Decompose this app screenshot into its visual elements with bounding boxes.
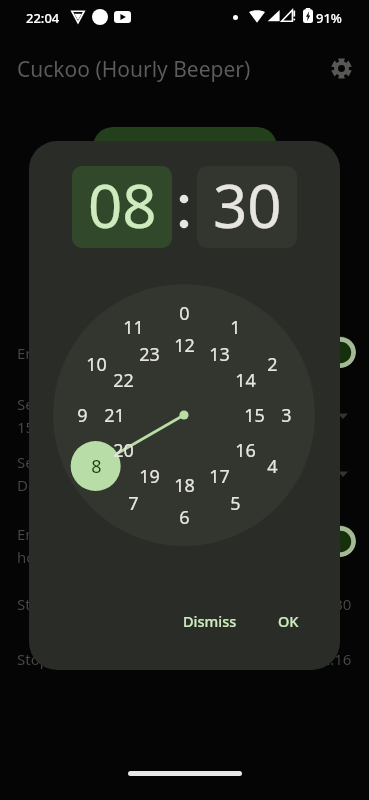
staticText: 30 (213, 166, 282, 246)
staticText: 15 ticks (17, 417, 70, 437)
staticText: Enable hourly beeps (17, 343, 161, 363)
staticText: 10 (86, 352, 107, 377)
staticText: 6 (179, 505, 190, 530)
staticText: 16 (235, 438, 256, 463)
staticText: Select volume (17, 452, 115, 472)
button[interactable]: 08 (72, 166, 172, 248)
staticText: 17 (209, 464, 230, 489)
staticText: 11 (123, 315, 144, 340)
staticText: OK (278, 611, 299, 631)
staticText: Stop time (17, 649, 85, 669)
staticText: 3 (281, 403, 292, 428)
staticText: 08:30 (313, 594, 352, 614)
staticText: 18 (174, 473, 195, 498)
button[interactable]: OK (266, 603, 311, 639)
staticText: Default (17, 475, 69, 495)
button[interactable] (306, 336, 356, 368)
staticText: 15 (244, 403, 265, 428)
staticText: 0 (179, 301, 190, 326)
staticText: 1 (230, 315, 241, 340)
staticText: Cuckoo (Hourly Beeper) (17, 55, 251, 84)
staticText: 22 (113, 368, 134, 393)
staticText: 12 (174, 333, 195, 358)
staticText: 22:16 (313, 649, 352, 669)
staticText: 8 (91, 454, 102, 479)
staticText: 91% (316, 9, 342, 27)
staticText: Start time (17, 594, 87, 614)
staticText: 23 (139, 342, 160, 367)
staticText: 4 (267, 454, 278, 479)
button[interactable] (93, 127, 277, 167)
button[interactable] (306, 525, 356, 557)
button[interactable]: Settings (325, 52, 357, 84)
staticText: 08 (88, 166, 157, 246)
staticText: 9 (77, 403, 88, 428)
staticText: 21 (104, 403, 125, 428)
staticText: hourly chime (17, 547, 110, 567)
button[interactable]: Dismiss (171, 603, 249, 639)
staticText: Select sound (17, 394, 107, 414)
staticText: 14 (235, 368, 256, 393)
staticText: 5 (230, 491, 241, 516)
staticText: 22:04 (26, 9, 60, 27)
staticText: 2 (267, 352, 278, 377)
staticText: 19 (139, 464, 160, 489)
button[interactable]: 30 (197, 166, 297, 248)
staticText: Enable on the hour (17, 524, 152, 544)
staticText: 13 (209, 342, 230, 367)
staticText: 20 (113, 438, 134, 463)
staticText: Dismiss (183, 611, 237, 631)
staticText: 7 (128, 491, 139, 516)
